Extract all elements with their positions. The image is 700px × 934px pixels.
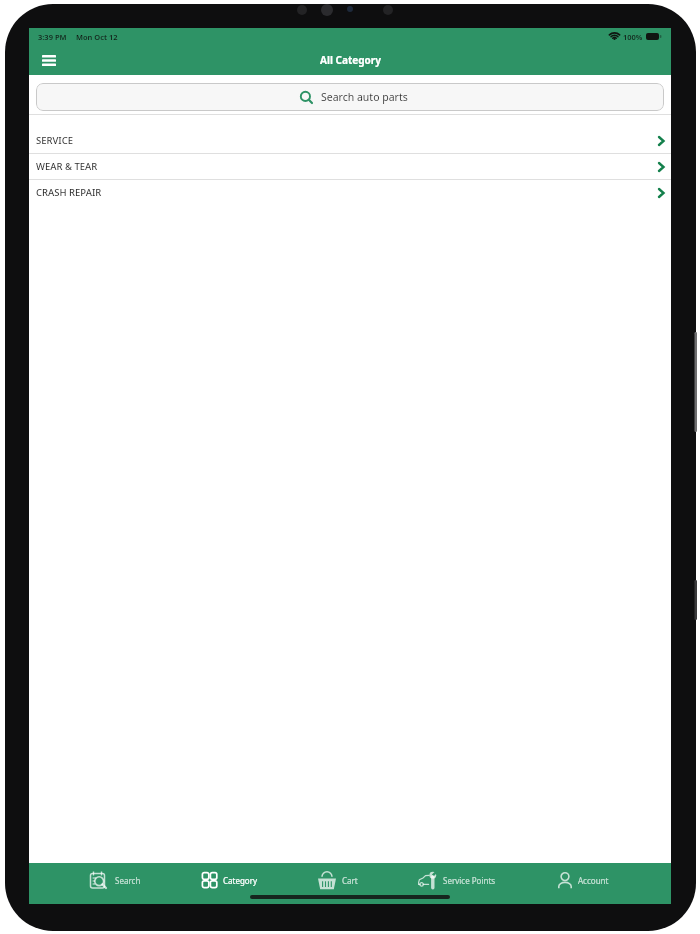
staticText: WEAR & TEAR	[36, 160, 98, 173]
button[interactable]: CRASH REPAIR	[29, 180, 671, 205]
button[interactable]: Category	[202, 863, 258, 897]
staticText: Cart	[342, 875, 358, 886]
staticText: Search	[115, 875, 141, 886]
staticText: Mon Oct 12	[76, 32, 118, 42]
staticText: Category	[223, 875, 258, 886]
staticText: Search auto parts	[321, 90, 408, 104]
button[interactable]: Service Points	[418, 863, 496, 897]
button[interactable]: Account	[558, 863, 609, 897]
staticText: Service Points	[443, 875, 496, 886]
button[interactable]: Search auto parts	[36, 83, 664, 111]
staticText: CRASH REPAIR	[36, 186, 102, 199]
staticText: Account	[578, 875, 609, 886]
staticText: 100%	[623, 32, 643, 42]
staticText: SERVICE	[36, 134, 74, 147]
staticText: All Category	[320, 53, 381, 67]
button[interactable]: Cart	[318, 863, 358, 897]
staticText: 3:39 PM	[38, 32, 67, 42]
button[interactable]: WEAR & TEAR	[29, 154, 671, 179]
button[interactable]: Search	[90, 863, 141, 897]
button[interactable]	[29, 45, 69, 75]
button[interactable]: SERVICE	[29, 128, 671, 153]
